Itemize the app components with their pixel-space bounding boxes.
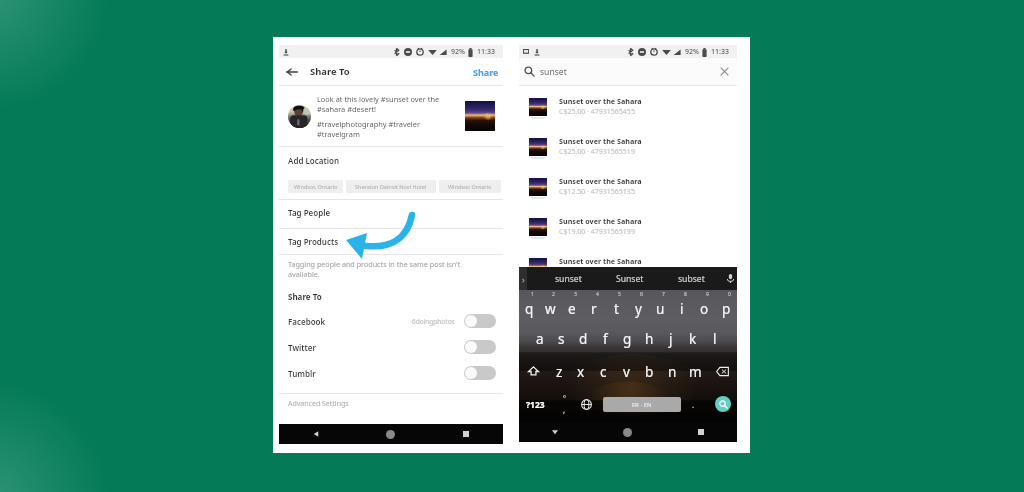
button[interactable]: h — [638, 323, 660, 355]
button[interactable]: Twitter — [279, 334, 503, 360]
staticText: i — [680, 300, 684, 318]
staticText: Tumblr — [288, 368, 316, 379]
button[interactable]: Recents — [664, 422, 737, 442]
staticText: a — [536, 330, 544, 348]
button[interactable]: 9 — [693, 290, 715, 323]
staticText: Sunset over the Sahara — [559, 136, 642, 146]
staticText: 11:33 — [477, 47, 495, 57]
button[interactable]: Shift — [519, 355, 548, 388]
button[interactable]: d — [572, 323, 594, 355]
staticText: Share — [473, 66, 499, 78]
button[interactable]: g — [616, 323, 638, 355]
staticText: 11:33 — [711, 47, 729, 57]
staticText: › — [522, 273, 525, 285]
button[interactable]: Sunset over the Sahara — [519, 206, 737, 246]
staticText: Share To — [288, 291, 322, 302]
button[interactable]: k — [682, 323, 704, 355]
button[interactable]: Change language — [576, 388, 596, 421]
button[interactable]: ?123 — [521, 388, 549, 421]
button[interactable]: 1 — [519, 290, 540, 323]
button[interactable]: Back — [279, 424, 353, 444]
button[interactable]: Add Location — [279, 147, 503, 173]
button[interactable]: Facebook — [279, 308, 503, 334]
button[interactable]: Recents — [428, 424, 503, 444]
button[interactable]: m — [684, 355, 707, 388]
button[interactable]: Home — [591, 422, 664, 442]
staticText: e — [568, 300, 576, 318]
button[interactable]: Clear search — [719, 66, 730, 77]
staticText: sunset — [555, 273, 582, 285]
button[interactable]: Share — [473, 66, 499, 78]
staticText: r — [591, 300, 597, 318]
button[interactable]: Sunset over the Sahara — [519, 86, 737, 126]
button[interactable]: c — [592, 355, 615, 388]
staticText: Tag People — [288, 207, 331, 218]
button[interactable]: Sunset — [607, 267, 653, 290]
button[interactable]: 8 — [671, 290, 693, 323]
button[interactable]: Sheraton Detroit Novi Hotel — [346, 180, 436, 193]
staticText: c — [600, 363, 607, 381]
button[interactable]: 0 — [715, 290, 737, 323]
staticText: 4 — [596, 291, 599, 298]
staticText: s — [558, 330, 565, 348]
button[interactable]: 4 — [583, 290, 605, 323]
button[interactable]: Tag People — [279, 200, 503, 228]
button[interactable]: 6 — [627, 290, 649, 323]
button[interactable]: subset — [668, 267, 714, 290]
button[interactable]: Backspace — [707, 355, 737, 388]
staticText: 9 — [706, 291, 709, 298]
staticText: 8 — [684, 291, 687, 298]
staticText: ?123 — [526, 399, 545, 411]
staticText: Add Location — [288, 155, 340, 166]
button[interactable]: Windsor, Ontario — [439, 180, 501, 193]
button[interactable]: b — [638, 355, 661, 388]
button[interactable]: Voice input — [726, 274, 735, 283]
staticText: Share To — [310, 65, 350, 78]
button[interactable]: . — [684, 388, 702, 421]
button[interactable]: More suggestions — [519, 267, 527, 290]
staticText: q — [525, 300, 534, 318]
staticText: u — [656, 300, 665, 318]
staticText: C$12.50 · 47931565135 — [559, 187, 635, 197]
staticText: C$25.00 · 47931565455 — [559, 107, 635, 117]
button[interactable]: 5 — [605, 290, 627, 323]
button[interactable]: Tag Products — [279, 229, 503, 254]
staticText: 2 — [552, 291, 555, 298]
button[interactable]: n — [661, 355, 684, 388]
button[interactable]: Search — [524, 66, 535, 77]
button[interactable]: sunset — [545, 267, 591, 290]
staticText: 0 — [728, 291, 731, 298]
button[interactable]: j — [660, 323, 682, 355]
staticText: l — [713, 330, 717, 348]
button[interactable]: 2 — [540, 290, 561, 323]
staticText: g — [623, 330, 632, 348]
button[interactable]: ° — [554, 388, 574, 421]
staticText: Sunset over the Sahara — [559, 176, 642, 186]
button[interactable]: Back — [286, 66, 298, 78]
staticText: t — [614, 300, 619, 318]
staticText: Sunset over the Sahara — [559, 256, 642, 266]
button[interactable]: z — [548, 355, 570, 388]
button[interactable]: x — [570, 355, 592, 388]
button[interactable]: Sunset over the Sahara — [519, 246, 737, 286]
staticText: 92% — [451, 47, 465, 57]
button[interactable]: f — [594, 323, 616, 355]
button[interactable]: v — [615, 355, 638, 388]
staticText: Tag Products — [288, 236, 339, 247]
button[interactable]: Home — [353, 424, 428, 444]
button[interactable]: Search — [715, 396, 731, 412]
staticText: 3 — [574, 291, 577, 298]
button[interactable]: Windsor, Ontario — [288, 180, 343, 193]
button[interactable]: Sunset over the Sahara — [519, 166, 737, 206]
button[interactable]: Back — [519, 422, 591, 442]
button[interactable]: l — [704, 323, 726, 355]
button[interactable]: Sunset over the Sahara — [519, 126, 737, 166]
staticText: Sunset over the Sahara — [559, 216, 642, 226]
button[interactable]: s — [550, 323, 572, 355]
button[interactable]: Tumblr — [279, 360, 503, 386]
button[interactable]: Space — [603, 397, 681, 412]
button[interactable]: a — [529, 323, 550, 355]
button[interactable]: 7 — [649, 290, 671, 323]
staticText: C$19.00 · 47931565199 — [559, 227, 635, 237]
button[interactable]: 3 — [561, 290, 583, 323]
